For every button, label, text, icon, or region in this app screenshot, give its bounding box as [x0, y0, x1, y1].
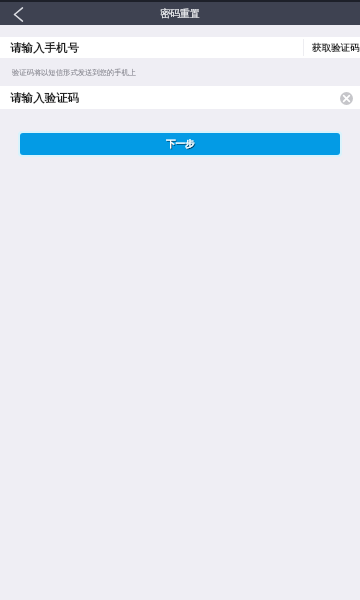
staticText: 验证码将以短信形式发送到您的手机上	[12, 68, 137, 77]
staticText: 请输入手机号	[10, 41, 79, 55]
staticText: 获取验证码	[312, 42, 360, 54]
staticText: 密码重置	[160, 7, 200, 20]
button[interactable]: Clear	[340, 92, 353, 105]
staticText: 下一步	[166, 138, 195, 150]
button[interactable]: 下一步	[18, 131, 342, 157]
staticText: 请输入验证码	[10, 91, 79, 105]
button[interactable]: 获取验证码	[304, 37, 360, 58]
button[interactable]: Back	[0, 2, 30, 25]
staticText: 下一步	[167, 139, 196, 151]
